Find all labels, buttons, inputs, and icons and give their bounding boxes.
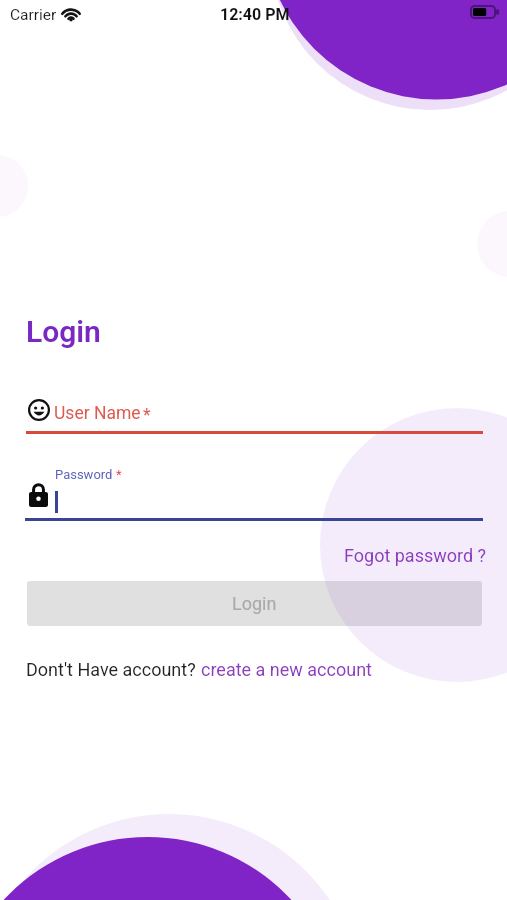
button[interactable]: Password [24,466,483,524]
button[interactable]: Fogot password ? [340,541,491,570]
button[interactable]: Login [27,581,482,626]
staticText: 12:40 PM [220,5,290,24]
staticText: Dont't Have account? [26,659,201,680]
staticText: Login [26,314,101,349]
staticText: User Name [54,403,141,424]
staticText: * [116,467,122,482]
button[interactable]: User Name [24,394,483,436]
staticText: Login [232,593,277,614]
staticText: Password [55,467,116,482]
staticText: Carrier [10,6,57,24]
button[interactable]: create a new account [201,659,372,680]
staticText: * [143,405,151,426]
